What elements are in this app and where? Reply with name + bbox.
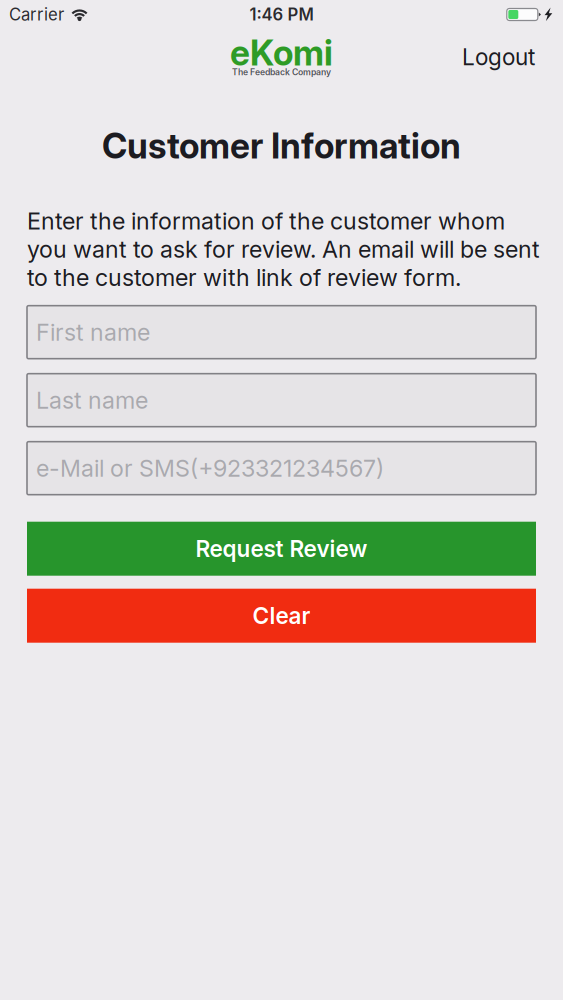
staticText: Last name xyxy=(36,386,148,414)
staticText: Enter the information of the customer wh… xyxy=(27,207,505,235)
button[interactable]: Logout xyxy=(448,29,549,81)
staticText: e-Mail or SMS(+923321234567) xyxy=(36,454,384,482)
button[interactable]: Request Review xyxy=(27,522,536,576)
staticText: First name xyxy=(36,318,150,346)
button[interactable]: e-Mail or SMS(+923321234567) xyxy=(27,442,536,495)
staticText: you want to ask for review. An email wil… xyxy=(27,235,540,263)
staticText: Customer Information xyxy=(102,125,461,167)
staticText: to the customer with link of review form… xyxy=(27,263,461,292)
staticText: Clear xyxy=(252,602,310,629)
staticText: Logout xyxy=(462,43,535,71)
staticText: 1:46 PM xyxy=(249,4,313,25)
staticText: Request Review xyxy=(195,535,367,562)
button[interactable]: Last name xyxy=(27,374,536,427)
button[interactable]: Clear xyxy=(27,589,536,643)
staticText: The Feedback Company xyxy=(232,67,331,77)
staticText: eKomi xyxy=(230,32,333,74)
button[interactable]: First name xyxy=(27,306,536,359)
staticText: Carrier xyxy=(9,4,64,25)
